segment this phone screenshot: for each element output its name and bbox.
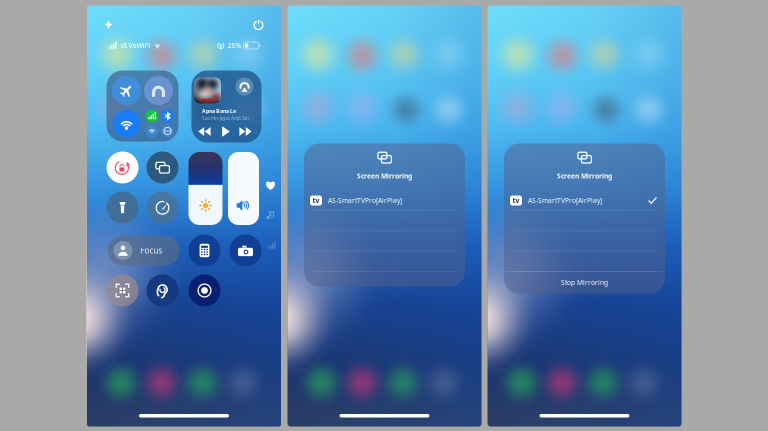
button[interactable]: Airplane Mode (112, 76, 141, 105)
button[interactable]: Calculator (188, 234, 220, 266)
staticText: AS-SmartTVPro[AirPlay] (328, 196, 402, 205)
staticText: Stop Mirroring (561, 278, 608, 287)
button[interactable]: Next (238, 125, 253, 138)
button[interactable]: Timer (146, 191, 178, 223)
staticText: 25% (227, 41, 241, 50)
button[interactable]: Screen Recording (188, 274, 220, 306)
button[interactable]: Hearing (146, 274, 178, 306)
button[interactable]: Rotation Lock (106, 151, 138, 183)
staticText: Apna Bana Le (202, 107, 236, 114)
button[interactable]: Siri (99, 15, 117, 33)
staticText: AS-SmartTVPro[AirPlay] (528, 196, 602, 205)
button[interactable]: Brightness (188, 152, 222, 225)
button[interactable]: Cellular Data (145, 109, 158, 122)
button[interactable]: Favorite (263, 178, 277, 192)
button[interactable]: Wi-Fi (112, 109, 140, 137)
button[interactable]: Power (249, 15, 267, 33)
staticText: tv (512, 196, 519, 205)
button[interactable]: Levels (264, 238, 278, 252)
button[interactable]: AirDrop (144, 76, 173, 105)
button[interactable]: Bluetooth (161, 109, 174, 122)
button[interactable]: Focus (107, 235, 179, 265)
staticText: tv (312, 196, 319, 205)
button[interactable]: Camera (229, 234, 261, 266)
button[interactable]: Volume (228, 152, 259, 225)
button[interactable]: Music (263, 208, 277, 222)
button[interactable]: AirPlay (235, 77, 253, 95)
button[interactable]: tv (504, 190, 665, 211)
staticText: VI VoWiFi (120, 41, 150, 50)
button[interactable]: Stop Mirroring (504, 271, 665, 293)
staticText: Sachin-Jigar, Arijit Sin (202, 114, 249, 122)
button[interactable]: Previous (197, 125, 212, 138)
button[interactable]: Personal Hotspot (145, 124, 158, 137)
staticText: Screen Mirroring (557, 172, 612, 180)
button[interactable]: Screen Mirroring (146, 151, 178, 183)
button[interactable]: Play (218, 124, 232, 138)
button[interactable]: Code Scanner (106, 274, 138, 306)
staticText: Focus (140, 245, 162, 256)
staticText: Screen Mirroring (357, 172, 412, 180)
button[interactable]: VPN (161, 124, 174, 137)
button[interactable]: Flashlight (106, 191, 138, 223)
button[interactable]: tv (304, 190, 465, 211)
